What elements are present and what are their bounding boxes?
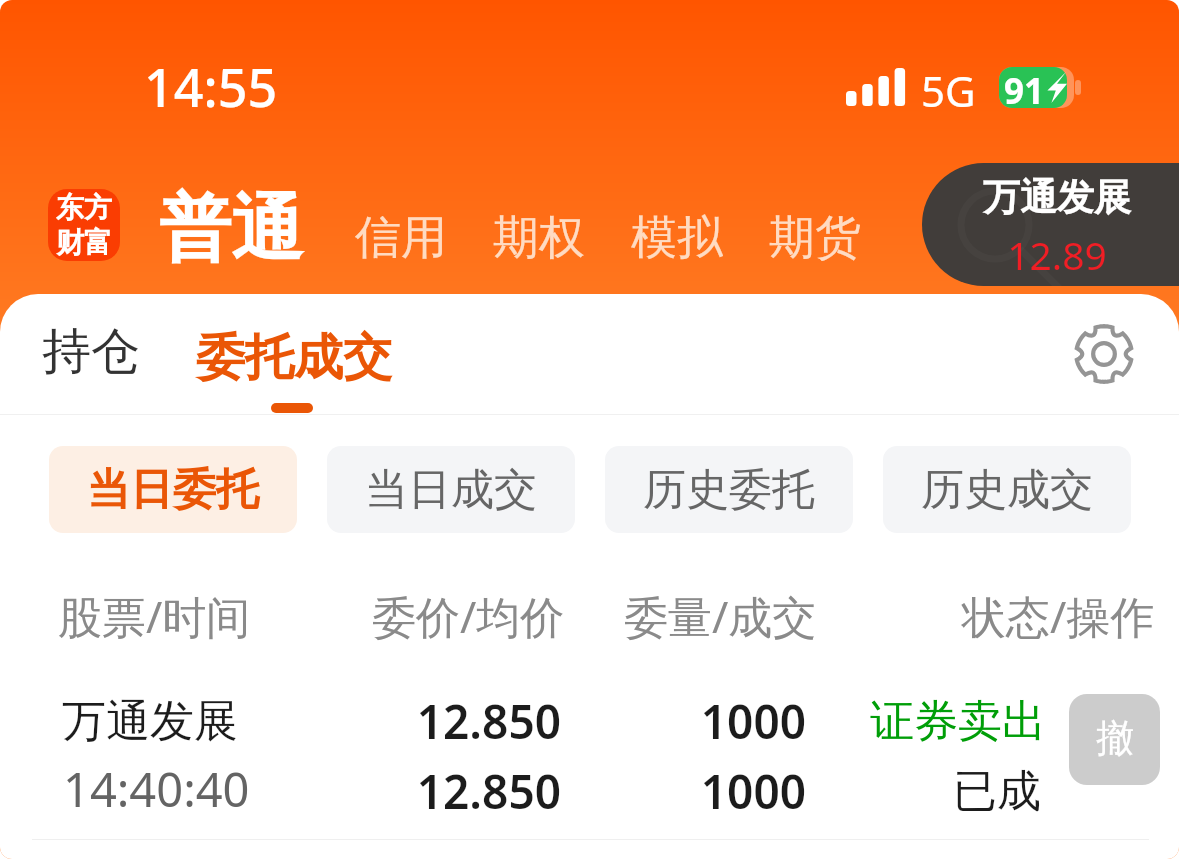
- staticText: 5G: [921, 62, 976, 119]
- button[interactable]: Cancel order: [1069, 694, 1160, 785]
- button[interactable]: 万通发展: [0, 684, 1179, 859]
- staticText: 1000: [600, 760, 806, 823]
- staticText: 信用: [355, 209, 447, 267]
- staticText: 91: [1004, 67, 1045, 108]
- staticText: 当日成交: [365, 463, 537, 517]
- staticText: 历史成交: [921, 463, 1093, 517]
- staticText: 14:55: [144, 51, 278, 122]
- staticText: 1000: [600, 690, 806, 753]
- button[interactable]: 当日成交: [327, 446, 575, 533]
- button[interactable]: 普通: [150, 170, 320, 280]
- staticText: 12.850: [341, 760, 561, 823]
- button[interactable]: Search stock: [922, 163, 1179, 286]
- staticText: 12.850: [341, 690, 561, 753]
- staticText: 委价/均价: [372, 586, 565, 646]
- button[interactable]: Settings: [1052, 302, 1156, 406]
- staticText: 财富: [56, 225, 112, 260]
- button[interactable]: 模拟: [617, 184, 732, 270]
- staticText: 万通发展: [983, 174, 1131, 221]
- staticText: 委量/成交: [624, 586, 817, 646]
- button[interactable]: 委托成交: [174, 300, 410, 408]
- button[interactable]: 当日委托: [49, 446, 297, 533]
- staticText: 期权: [493, 209, 585, 267]
- staticText: 撤: [1096, 714, 1134, 762]
- staticText: 普通: [159, 184, 303, 275]
- button[interactable]: 历史成交: [883, 446, 1131, 533]
- button[interactable]: 历史委托: [605, 446, 853, 533]
- staticText: 持仓: [42, 321, 140, 383]
- staticText: 已成: [841, 764, 1041, 819]
- button[interactable]: 信用: [341, 184, 456, 270]
- staticText: 12.89: [983, 228, 1131, 281]
- button[interactable]: 期货: [755, 184, 870, 270]
- staticText: 期货: [769, 209, 861, 267]
- staticText: 东方: [56, 190, 112, 225]
- button[interactable]: 持仓: [16, 300, 166, 408]
- staticText: 万通发展: [62, 694, 238, 749]
- button[interactable]: East Money logo: [48, 189, 120, 261]
- staticText: 状态/操作: [962, 586, 1155, 646]
- button[interactable]: 期权: [479, 184, 594, 270]
- staticText: 股票/时间: [58, 586, 251, 646]
- staticText: 历史委托: [643, 463, 815, 517]
- staticText: 模拟: [631, 209, 723, 267]
- staticText: 14:40:40: [63, 757, 250, 821]
- staticText: 证券卖出: [846, 694, 1046, 749]
- staticText: 当日委托: [87, 463, 259, 517]
- staticText: 委托成交: [196, 327, 392, 389]
